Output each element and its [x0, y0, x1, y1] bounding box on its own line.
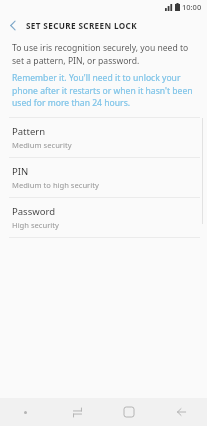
- staticText: SET SECURE SCREEN LOCK: [26, 20, 137, 31]
- button[interactable]: Recents: [51, 398, 103, 426]
- staticText: High security: [12, 220, 59, 230]
- staticText: Medium security: [12, 140, 72, 150]
- button[interactable]: Pattern: [0, 118, 207, 157]
- staticText: 10:00: [182, 2, 202, 12]
- button[interactable]: Back: [0, 14, 26, 36]
- staticText: Remember it. You'll need it to unlock yo…: [12, 72, 195, 108]
- staticText: To use iris recognition securely, you ne…: [12, 42, 195, 66]
- staticText: Pattern: [12, 125, 46, 138]
- staticText: PIN: [12, 165, 29, 178]
- button[interactable]: Password: [0, 198, 207, 237]
- staticText: Medium to high security: [12, 180, 99, 190]
- staticText: Password: [12, 205, 55, 218]
- button[interactable]: Home: [103, 398, 155, 426]
- button[interactable]: Back: [155, 398, 207, 426]
- button[interactable]: Indicator: [0, 398, 51, 426]
- button[interactable]: PIN: [0, 158, 207, 197]
